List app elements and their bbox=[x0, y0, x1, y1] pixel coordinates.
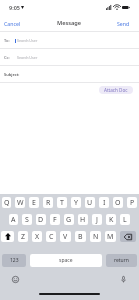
staticText: Z bbox=[21, 232, 26, 242]
button[interactable]: return bbox=[106, 254, 137, 267]
button[interactable]: B bbox=[75, 231, 86, 242]
staticText: G bbox=[66, 215, 72, 225]
staticText: Search User bbox=[17, 55, 38, 60]
button[interactable]: To: bbox=[0, 32, 139, 48]
staticText: C bbox=[49, 232, 54, 242]
button[interactable]: K bbox=[106, 214, 116, 225]
staticText: T bbox=[60, 198, 64, 208]
button[interactable]: H bbox=[78, 214, 88, 225]
button[interactable]: Cc: bbox=[0, 49, 139, 65]
staticText: P bbox=[130, 198, 135, 208]
button[interactable]: Backspace bbox=[120, 231, 136, 242]
staticText: 123 bbox=[10, 257, 19, 264]
button[interactable]: Attach Doc bbox=[99, 86, 133, 94]
button[interactable]: Dictation bbox=[118, 274, 128, 284]
staticText: R bbox=[46, 198, 51, 208]
button[interactable]: O bbox=[113, 197, 123, 208]
staticText: Subject: bbox=[4, 72, 20, 77]
staticText: Message bbox=[57, 19, 82, 27]
staticText: J bbox=[96, 215, 98, 225]
staticText: Q bbox=[4, 198, 10, 208]
staticText: W bbox=[17, 198, 24, 208]
staticText: Attach Doc bbox=[104, 87, 128, 93]
button[interactable]: I bbox=[99, 197, 109, 208]
staticText: M bbox=[107, 232, 114, 242]
staticText: Search User bbox=[17, 38, 38, 43]
button[interactable]: W bbox=[15, 197, 25, 208]
staticText: O bbox=[115, 198, 121, 208]
staticText: N bbox=[93, 232, 99, 242]
button[interactable]: A bbox=[9, 214, 18, 225]
staticText: K bbox=[109, 215, 114, 225]
staticText: Cc: bbox=[4, 55, 10, 60]
staticText: To: bbox=[4, 38, 10, 43]
staticText: Y bbox=[74, 198, 78, 208]
button[interactable]: Cancel bbox=[0, 15, 27, 31]
staticText: F bbox=[53, 215, 57, 225]
staticText: U bbox=[87, 198, 93, 208]
button[interactable]: J bbox=[92, 214, 102, 225]
staticText: Send bbox=[117, 20, 130, 27]
staticText: V bbox=[63, 232, 68, 242]
button[interactable]: G bbox=[64, 214, 74, 225]
staticText: X bbox=[35, 232, 40, 242]
staticText: A bbox=[11, 215, 16, 225]
button[interactable]: S bbox=[22, 214, 32, 225]
button[interactable]: L bbox=[120, 214, 130, 225]
staticText: return bbox=[114, 257, 129, 264]
staticText: I bbox=[103, 198, 106, 208]
staticText: B bbox=[78, 232, 83, 242]
button[interactable]: F bbox=[50, 214, 60, 225]
button[interactable]: Shift bbox=[1, 231, 14, 242]
button[interactable]: space bbox=[30, 254, 102, 267]
button[interactable]: Z bbox=[18, 231, 28, 242]
button[interactable]: N bbox=[90, 231, 101, 242]
staticText: Cancel bbox=[4, 20, 21, 27]
staticText: L bbox=[123, 215, 127, 225]
staticText: space bbox=[59, 257, 73, 264]
button[interactable]: M bbox=[105, 231, 116, 242]
button[interactable]: 123 bbox=[2, 254, 26, 267]
button[interactable]: Subject: bbox=[0, 66, 139, 82]
button[interactable]: T bbox=[57, 197, 67, 208]
button[interactable]: V bbox=[60, 231, 71, 242]
button[interactable]: X bbox=[32, 231, 42, 242]
staticText: H bbox=[80, 215, 86, 225]
button[interactable]: Q bbox=[2, 197, 11, 208]
button[interactable]: D bbox=[36, 214, 46, 225]
staticText: 9:05 bbox=[9, 4, 20, 11]
button[interactable]: P bbox=[127, 197, 137, 208]
button[interactable]: Y bbox=[71, 197, 81, 208]
staticText: D bbox=[38, 215, 44, 225]
button[interactable]: C bbox=[46, 231, 56, 242]
button[interactable]: Emoji bbox=[10, 274, 20, 284]
staticText: E bbox=[32, 198, 36, 208]
button[interactable]: U bbox=[85, 197, 95, 208]
button[interactable]: R bbox=[43, 197, 53, 208]
button[interactable]: E bbox=[29, 197, 39, 208]
button[interactable]: Send bbox=[111, 15, 139, 31]
staticText: S bbox=[25, 215, 29, 225]
